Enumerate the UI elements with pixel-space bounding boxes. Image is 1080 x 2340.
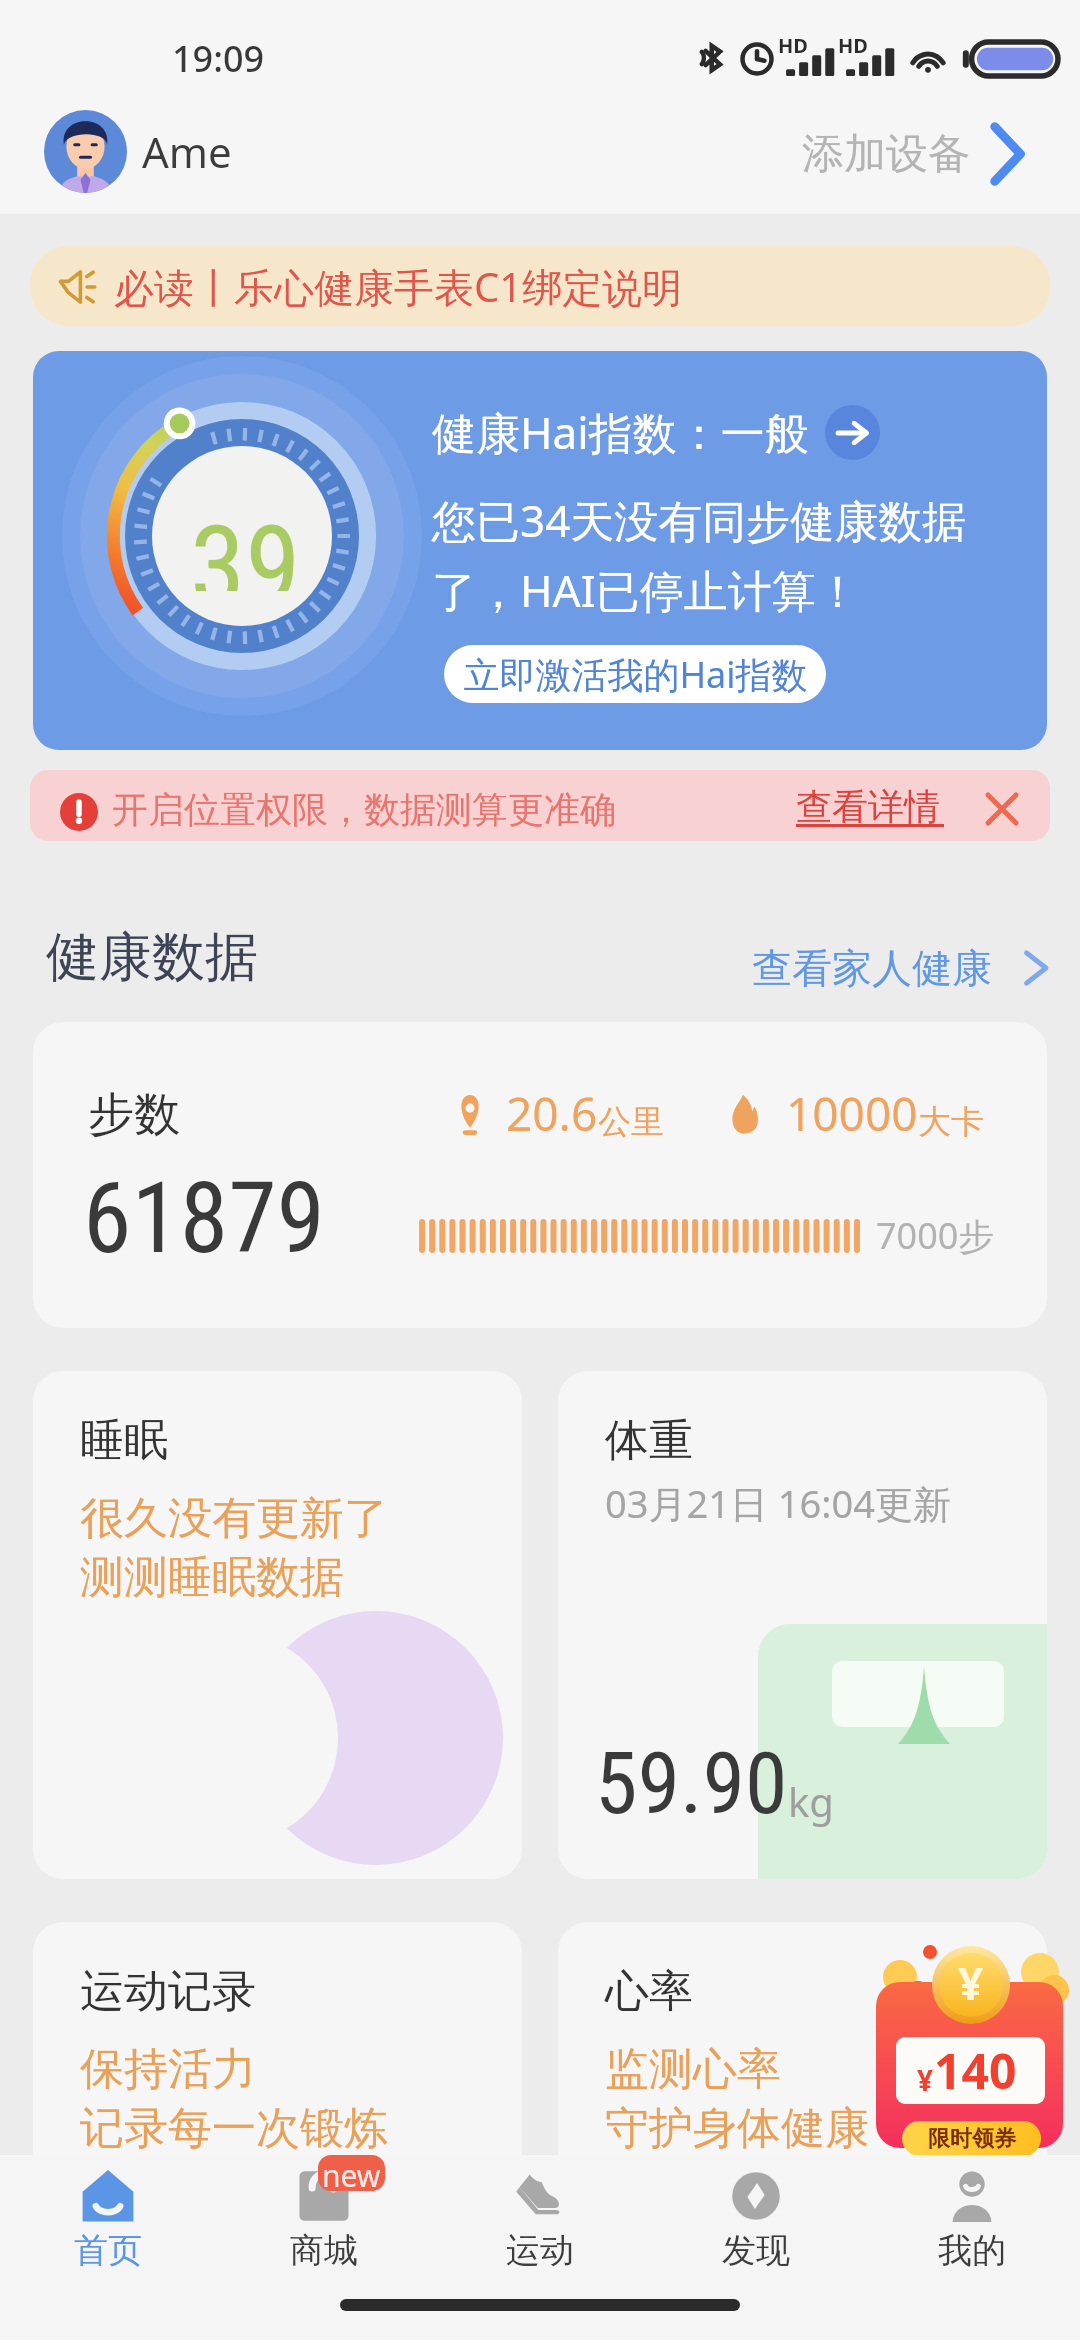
staticText: 很久没有更新了 测测睡眠数据 <box>80 1491 388 1605</box>
button[interactable]: 查看详情 <box>796 784 944 832</box>
button[interactable]: Close <box>986 793 1018 825</box>
staticText: 监测心率 守护身体健康 <box>605 2042 869 2156</box>
staticText: 10000 <box>786 1082 918 1145</box>
button[interactable]: 发现 <box>648 2155 864 2282</box>
button[interactable]: Profile <box>44 110 127 193</box>
button[interactable]: 运动 <box>432 2155 648 2282</box>
staticText: 61879 <box>83 1161 325 1276</box>
staticText: 保持活力 记录每一次锻炼 <box>80 2042 388 2156</box>
staticText: 140 <box>934 2038 1017 2103</box>
staticText: 查看详情 <box>796 784 940 829</box>
staticText: 39 <box>190 501 301 591</box>
staticText: 发现 <box>722 2229 790 2272</box>
staticText: 限时领券 <box>928 2125 1016 2153</box>
staticText: HD <box>778 32 808 59</box>
staticText: 查看家人健康 <box>752 943 992 993</box>
button[interactable]: 体重 <box>558 1371 1047 1879</box>
staticText: 商城 <box>290 2229 358 2272</box>
staticText: 首页 <box>74 2229 142 2272</box>
button[interactable]: Coupon <box>868 1940 1080 2170</box>
staticText: 大卡 <box>918 1101 984 1143</box>
button[interactable]: 心率 <box>558 1922 1047 2222</box>
button[interactable]: 运动记录 <box>33 1922 522 2222</box>
staticText: 体重 <box>605 1413 693 1468</box>
staticText: 健康数据 <box>46 924 258 991</box>
staticText: Ame <box>142 123 232 180</box>
staticText: HD <box>838 32 868 59</box>
staticText: new <box>322 2155 381 2191</box>
staticText: 添加设备 <box>802 128 970 181</box>
staticText: 必读丨乐心健康手表C1绑定说明 <box>114 259 683 314</box>
staticText: 运动 <box>506 2229 574 2272</box>
staticText: ¥ <box>917 2061 934 2099</box>
button[interactable]: 39 <box>33 351 1047 750</box>
staticText: 您已34天没有同步健康数据 了，HAI已停止计算！ <box>432 490 967 620</box>
staticText: 我的 <box>938 2229 1006 2272</box>
staticText: 19:09 <box>172 34 265 83</box>
button[interactable]: 睡眠 <box>33 1371 522 1879</box>
button[interactable]: 我的 <box>864 2155 1080 2282</box>
button[interactable]: 立即激活我的Hai指数 <box>444 645 826 703</box>
button[interactable]: 查看家人健康 <box>752 943 1056 993</box>
button[interactable]: 必读丨乐心健康手表C1绑定说明 <box>30 246 1050 326</box>
button[interactable]: 步数 <box>33 1022 1047 1328</box>
button[interactable]: 添加设备 <box>802 123 1026 185</box>
staticText: 20.6 <box>506 1082 598 1145</box>
staticText: 步数 <box>88 1086 180 1144</box>
staticText: 运动记录 <box>80 1964 256 2019</box>
staticText: 心率 <box>605 1964 693 2019</box>
staticText: kg <box>788 1774 834 1828</box>
button[interactable]: 首页 <box>0 2155 216 2282</box>
button[interactable]: Details <box>825 405 880 460</box>
staticText: 开启位置权限，数据测算更准确 <box>112 787 616 832</box>
staticText: ¥ <box>958 1953 984 2013</box>
staticText: 03月21日 16:04更新 <box>605 1477 951 1529</box>
staticText: 59.90 <box>595 1733 788 1834</box>
button[interactable]: new <box>216 2155 432 2282</box>
staticText: 立即激活我的Hai指数 <box>463 650 808 699</box>
staticText: 睡眠 <box>80 1413 168 1468</box>
staticText: 健康Hai指数：一般 <box>432 402 809 462</box>
staticText: 公里 <box>598 1101 664 1143</box>
staticText: 7000步 <box>876 1211 995 1260</box>
